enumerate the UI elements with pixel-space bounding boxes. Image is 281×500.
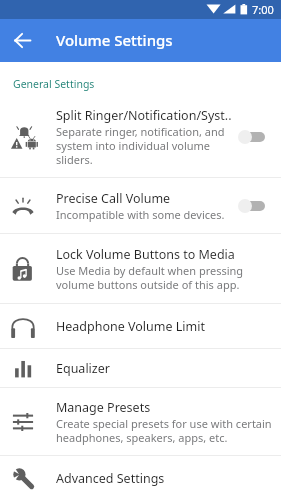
staticText: General Settings <box>13 77 95 91</box>
button[interactable]: Precise Call Volume <box>0 178 281 234</box>
button[interactable]: Split Ringer/Notification/Syst.. <box>0 95 281 178</box>
button[interactable]: Advanced Settings <box>0 456 281 500</box>
button[interactable]: Back <box>0 19 44 62</box>
staticText: Lock Volume Buttons to Media <box>56 246 235 263</box>
staticText: Separate ringer, notification, and syste… <box>56 124 234 167</box>
staticText: Precise Call Volume <box>56 190 171 207</box>
staticText: Create special presets for use with cert… <box>56 416 277 445</box>
button[interactable] <box>238 95 281 178</box>
staticText: Split Ringer/Notification/Syst.. <box>56 107 232 124</box>
staticText: Headphone Volume Limit <box>56 318 205 335</box>
staticText: Incompatible with some devices. <box>56 207 225 222</box>
button[interactable]: Lock Volume Buttons to Media <box>0 234 281 304</box>
button[interactable]: Equalizer <box>0 349 281 388</box>
button[interactable] <box>238 178 281 234</box>
staticText: Equalizer <box>56 360 110 377</box>
staticText: Advanced Settings <box>56 470 165 487</box>
staticText: Use Media by default when pressing volum… <box>56 263 277 292</box>
button[interactable]: Headphone Volume Limit <box>0 304 281 349</box>
button[interactable]: Manage Presets <box>0 388 281 456</box>
staticText: 7:00 <box>252 2 274 17</box>
staticText: Manage Presets <box>56 399 151 416</box>
staticText: Volume Settings <box>56 30 173 50</box>
